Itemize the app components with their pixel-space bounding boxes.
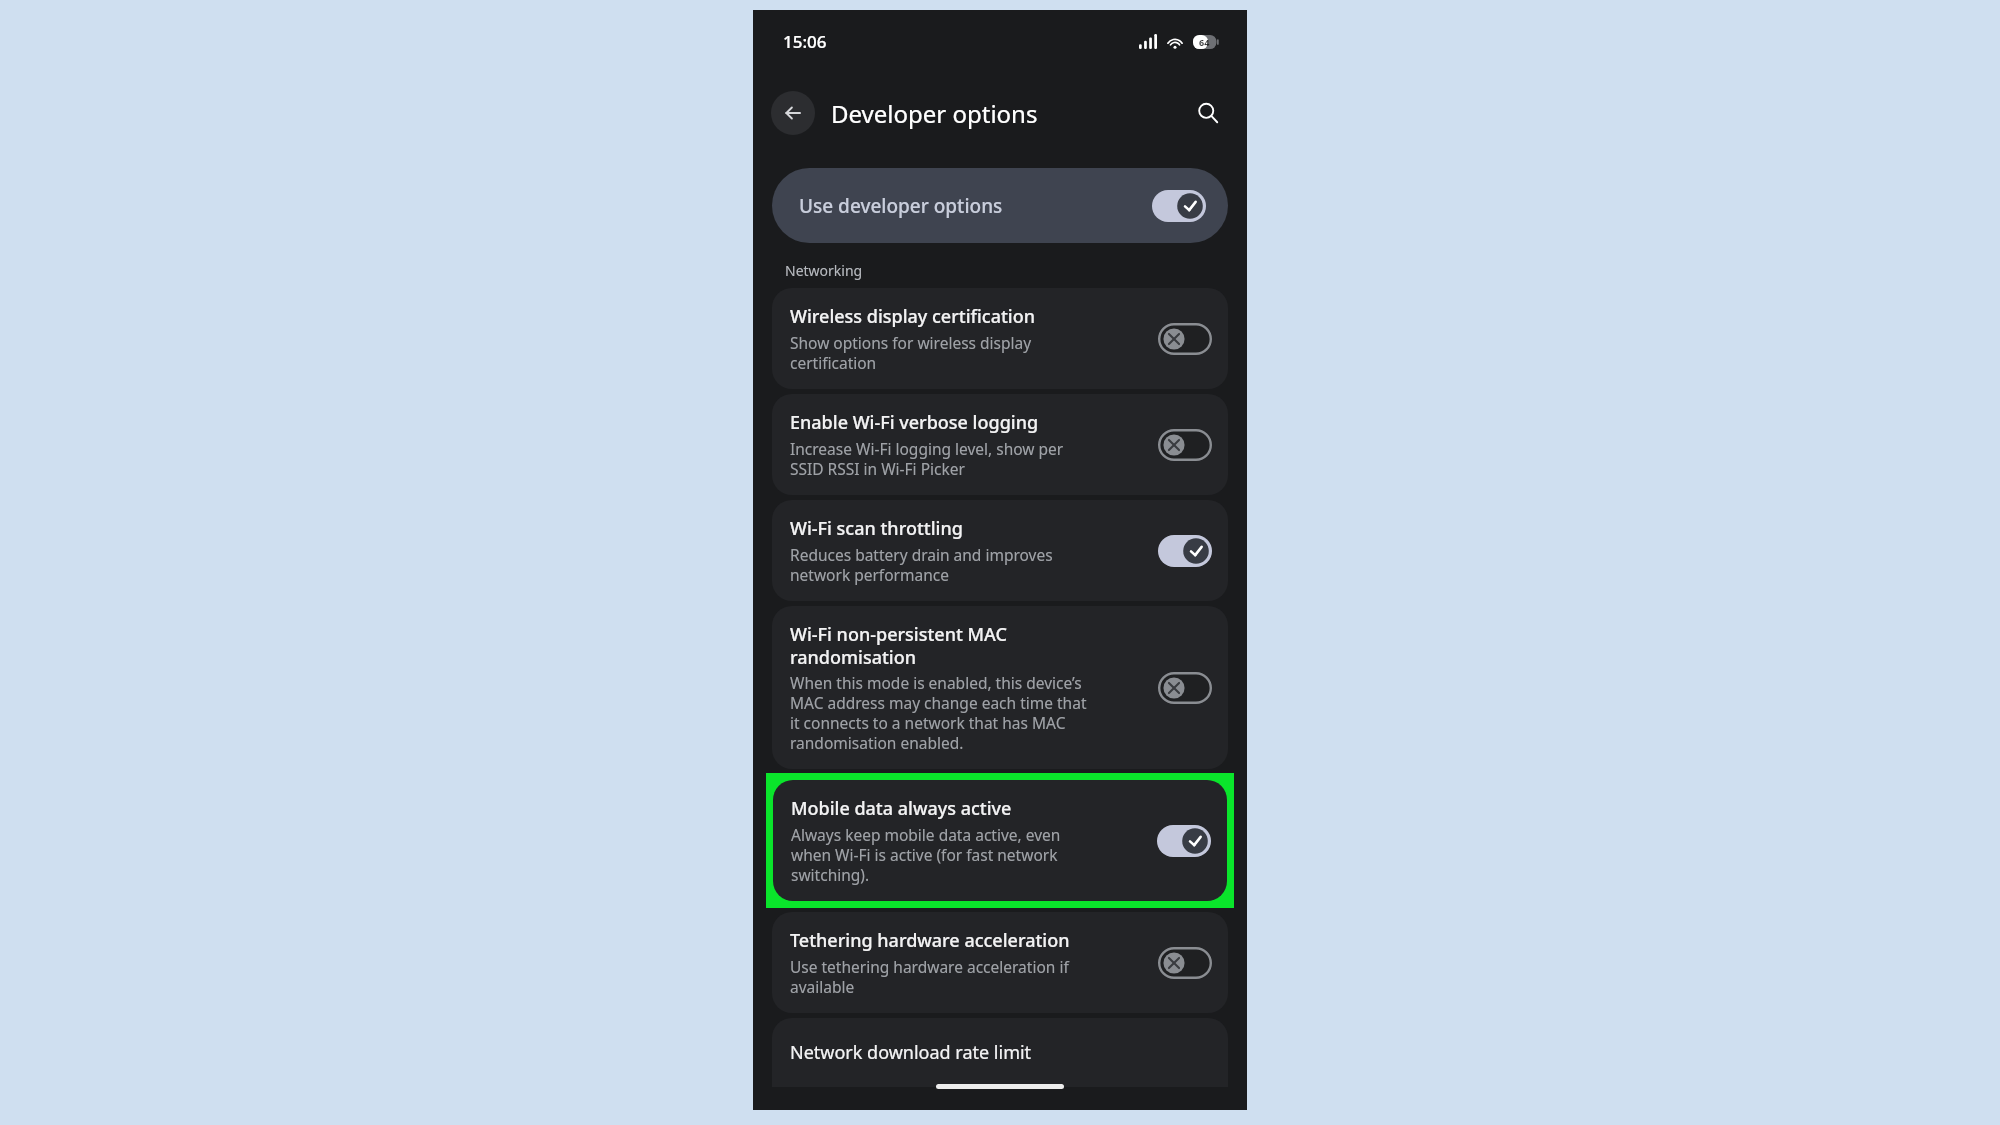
staticText: Network download rate limit	[790, 1040, 1032, 1065]
staticText: Wi-Fi non-persistent MAC randomisation	[790, 622, 1007, 669]
staticText: Reduces battery drain and improves netwo…	[790, 544, 1053, 585]
staticText: Mobile data always active	[791, 796, 1012, 821]
button[interactable]: Toggle on	[1157, 825, 1211, 857]
staticText: 15:06	[783, 30, 827, 53]
staticText: Wi-Fi scan throttling	[790, 516, 963, 541]
button[interactable]: Toggle off	[1158, 429, 1212, 461]
staticText: Enable Wi-Fi verbose logging	[790, 410, 1039, 435]
button[interactable]: Search	[1187, 92, 1229, 134]
button[interactable]: Network download rate limit	[772, 1018, 1228, 1087]
button[interactable]: Back	[771, 91, 815, 135]
staticText: Developer options	[831, 97, 1038, 130]
button[interactable]: Wireless display certification	[772, 288, 1228, 389]
button[interactable]: Toggle off	[1158, 672, 1212, 704]
staticText: When this mode is enabled, this device’s…	[790, 672, 1087, 753]
staticText: 64	[1199, 36, 1210, 48]
staticText: Use developer options	[799, 193, 1152, 219]
button[interactable]: Wi-Fi scan throttling	[772, 500, 1228, 601]
staticText: Show options for wireless display certif…	[790, 332, 1032, 373]
staticText: Tethering hardware acceleration	[790, 928, 1070, 953]
button[interactable]: Use developer options	[772, 168, 1228, 243]
button[interactable]: Toggle off	[1158, 947, 1212, 979]
staticText: Increase Wi-Fi logging level, show per S…	[790, 438, 1064, 479]
staticText: Use tethering hardware acceleration if a…	[790, 956, 1069, 997]
button[interactable]: Wi-Fi non-persistent MAC randomisation	[772, 606, 1228, 769]
staticText: Always keep mobile data active, even whe…	[791, 824, 1061, 885]
staticText: Wireless display certification	[790, 304, 1035, 329]
button[interactable]: Tethering hardware acceleration	[772, 912, 1228, 1013]
button[interactable]: Enable Wi-Fi verbose logging	[772, 394, 1228, 495]
staticText: Networking	[785, 261, 863, 280]
button[interactable]: Mobile data always active	[773, 780, 1227, 901]
button[interactable]: Toggle on	[1158, 535, 1212, 567]
button[interactable]: Toggle off	[1158, 323, 1212, 355]
